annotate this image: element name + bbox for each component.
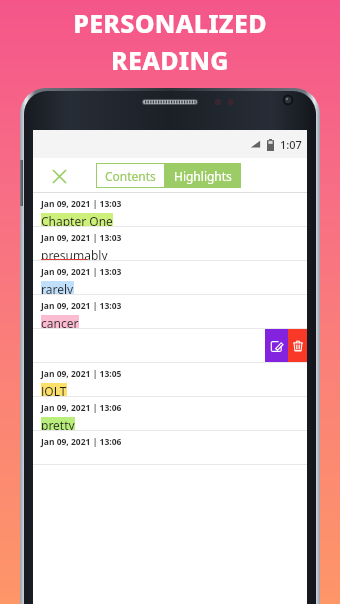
staticText: pretty	[41, 417, 75, 430]
staticText: Jan 09, 2021 | 13:06	[41, 402, 122, 414]
staticText: Contents	[105, 168, 156, 184]
staticText: presumably	[41, 247, 108, 260]
button[interactable]: Jan 09, 2021 | 13:03	[33, 227, 307, 261]
staticText: Jan 09, 2021 | 13:03	[41, 300, 122, 312]
button[interactable]: Jan 09, 2021 | 13:03	[33, 261, 307, 295]
staticText: Jan 09, 2021 | 13:05	[41, 368, 122, 380]
staticText: Jan 09, 2021 | 13:03	[41, 266, 122, 278]
button[interactable]: Delete	[288, 329, 307, 363]
button[interactable]: Jan 09, 2021 | 13:05	[33, 363, 307, 397]
button[interactable]: Contents	[96, 163, 165, 188]
staticText: JOLT	[41, 383, 67, 396]
staticText: PERSONALIZED	[73, 6, 267, 40]
button[interactable]: Highlights	[165, 163, 241, 188]
staticText: 1:07	[280, 137, 302, 152]
button[interactable]: Jan 09, 2021 | 13:03	[33, 295, 307, 329]
staticText: Jan 09, 2021 | 13:03	[41, 232, 122, 244]
button[interactable]: Jan 09, 2021 | 13:06	[33, 431, 307, 465]
staticText: Chapter One	[41, 213, 113, 226]
button[interactable]: Close	[46, 163, 72, 189]
button[interactable]: Jan 09, 2021 | 13:06	[33, 397, 307, 431]
staticText: Jan 09, 2021 | 13:03	[41, 198, 122, 210]
staticText: rarely	[41, 281, 74, 294]
staticText: READING	[111, 43, 229, 77]
staticText: Highlights	[174, 168, 232, 184]
staticText: Jan 09, 2021 | 13:06	[41, 436, 122, 448]
button[interactable]: Jan 09, 2021 | 13:03	[33, 193, 307, 227]
button[interactable]: Edit	[265, 329, 288, 363]
staticText: cancer	[41, 315, 79, 328]
